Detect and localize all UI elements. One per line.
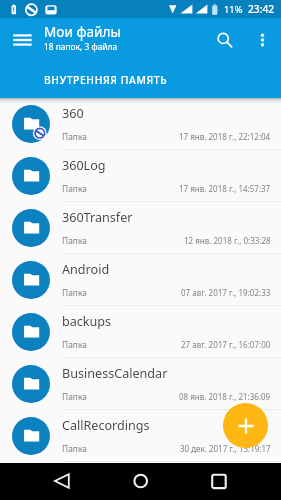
button[interactable]: Add: [223, 403, 268, 448]
staticText: BusinessCalendar: [62, 365, 168, 382]
button[interactable]: Android: [0, 254, 281, 306]
staticText: ВНУТРЕННЯЯ ПАМЯТЬ: [44, 73, 168, 87]
staticText: Папка: [62, 443, 87, 454]
staticText: 17 янв. 2018 г., 14:57:37: [179, 183, 271, 194]
staticText: 07 авг. 2017 г., 19:02:33: [181, 287, 271, 298]
staticText: 08 янв. 2018 г., 21:36:09: [179, 391, 271, 402]
button[interactable]: CallRecordings: [0, 410, 281, 462]
staticText: 18 папок, 3 файла: [44, 41, 118, 52]
staticText: Папка: [62, 235, 87, 246]
button[interactable]: BusinessCalendar: [0, 358, 281, 410]
staticText: 17 янв. 2018 г., 22:12:04: [179, 131, 271, 142]
button[interactable]: 360Transfer: [0, 202, 281, 254]
button[interactable]: backups: [0, 306, 281, 358]
staticText: backups: [62, 313, 112, 330]
staticText: 11%: [224, 3, 243, 16]
staticText: 12 янв. 2018 г., 0:33:28: [184, 235, 271, 246]
button[interactable]: Back: [42, 463, 82, 500]
staticText: Папка: [62, 287, 87, 298]
button[interactable]: 360Log: [0, 150, 281, 202]
button[interactable]: Search: [205, 18, 243, 56]
staticText: Папка: [62, 339, 87, 350]
button[interactable]: 360: [0, 98, 281, 150]
button[interactable]: Recent apps: [199, 463, 239, 500]
staticText: 360Transfer: [62, 209, 133, 226]
staticText: Папка: [62, 131, 87, 142]
button[interactable]: More options: [246, 18, 280, 52]
staticText: 360Log: [62, 157, 106, 174]
button[interactable]: Open navigation menu: [2, 18, 42, 58]
staticText: CallRecordings: [62, 417, 150, 434]
staticText: 30 дек. 2017 г., 13:19:17: [180, 443, 271, 454]
staticText: 23:42: [248, 2, 275, 16]
button[interactable]: Home: [121, 463, 161, 500]
staticText: 27 авг. 2017 г., 16:07:00: [181, 339, 271, 350]
staticText: Папка: [62, 183, 87, 194]
button[interactable]: ВНУТРЕННЯЯ ПАМЯТЬ: [0, 58, 281, 98]
staticText: Android: [62, 261, 110, 278]
staticText: Папка: [62, 391, 87, 402]
staticText: Мои файлы: [44, 22, 121, 41]
staticText: 360: [62, 105, 84, 122]
